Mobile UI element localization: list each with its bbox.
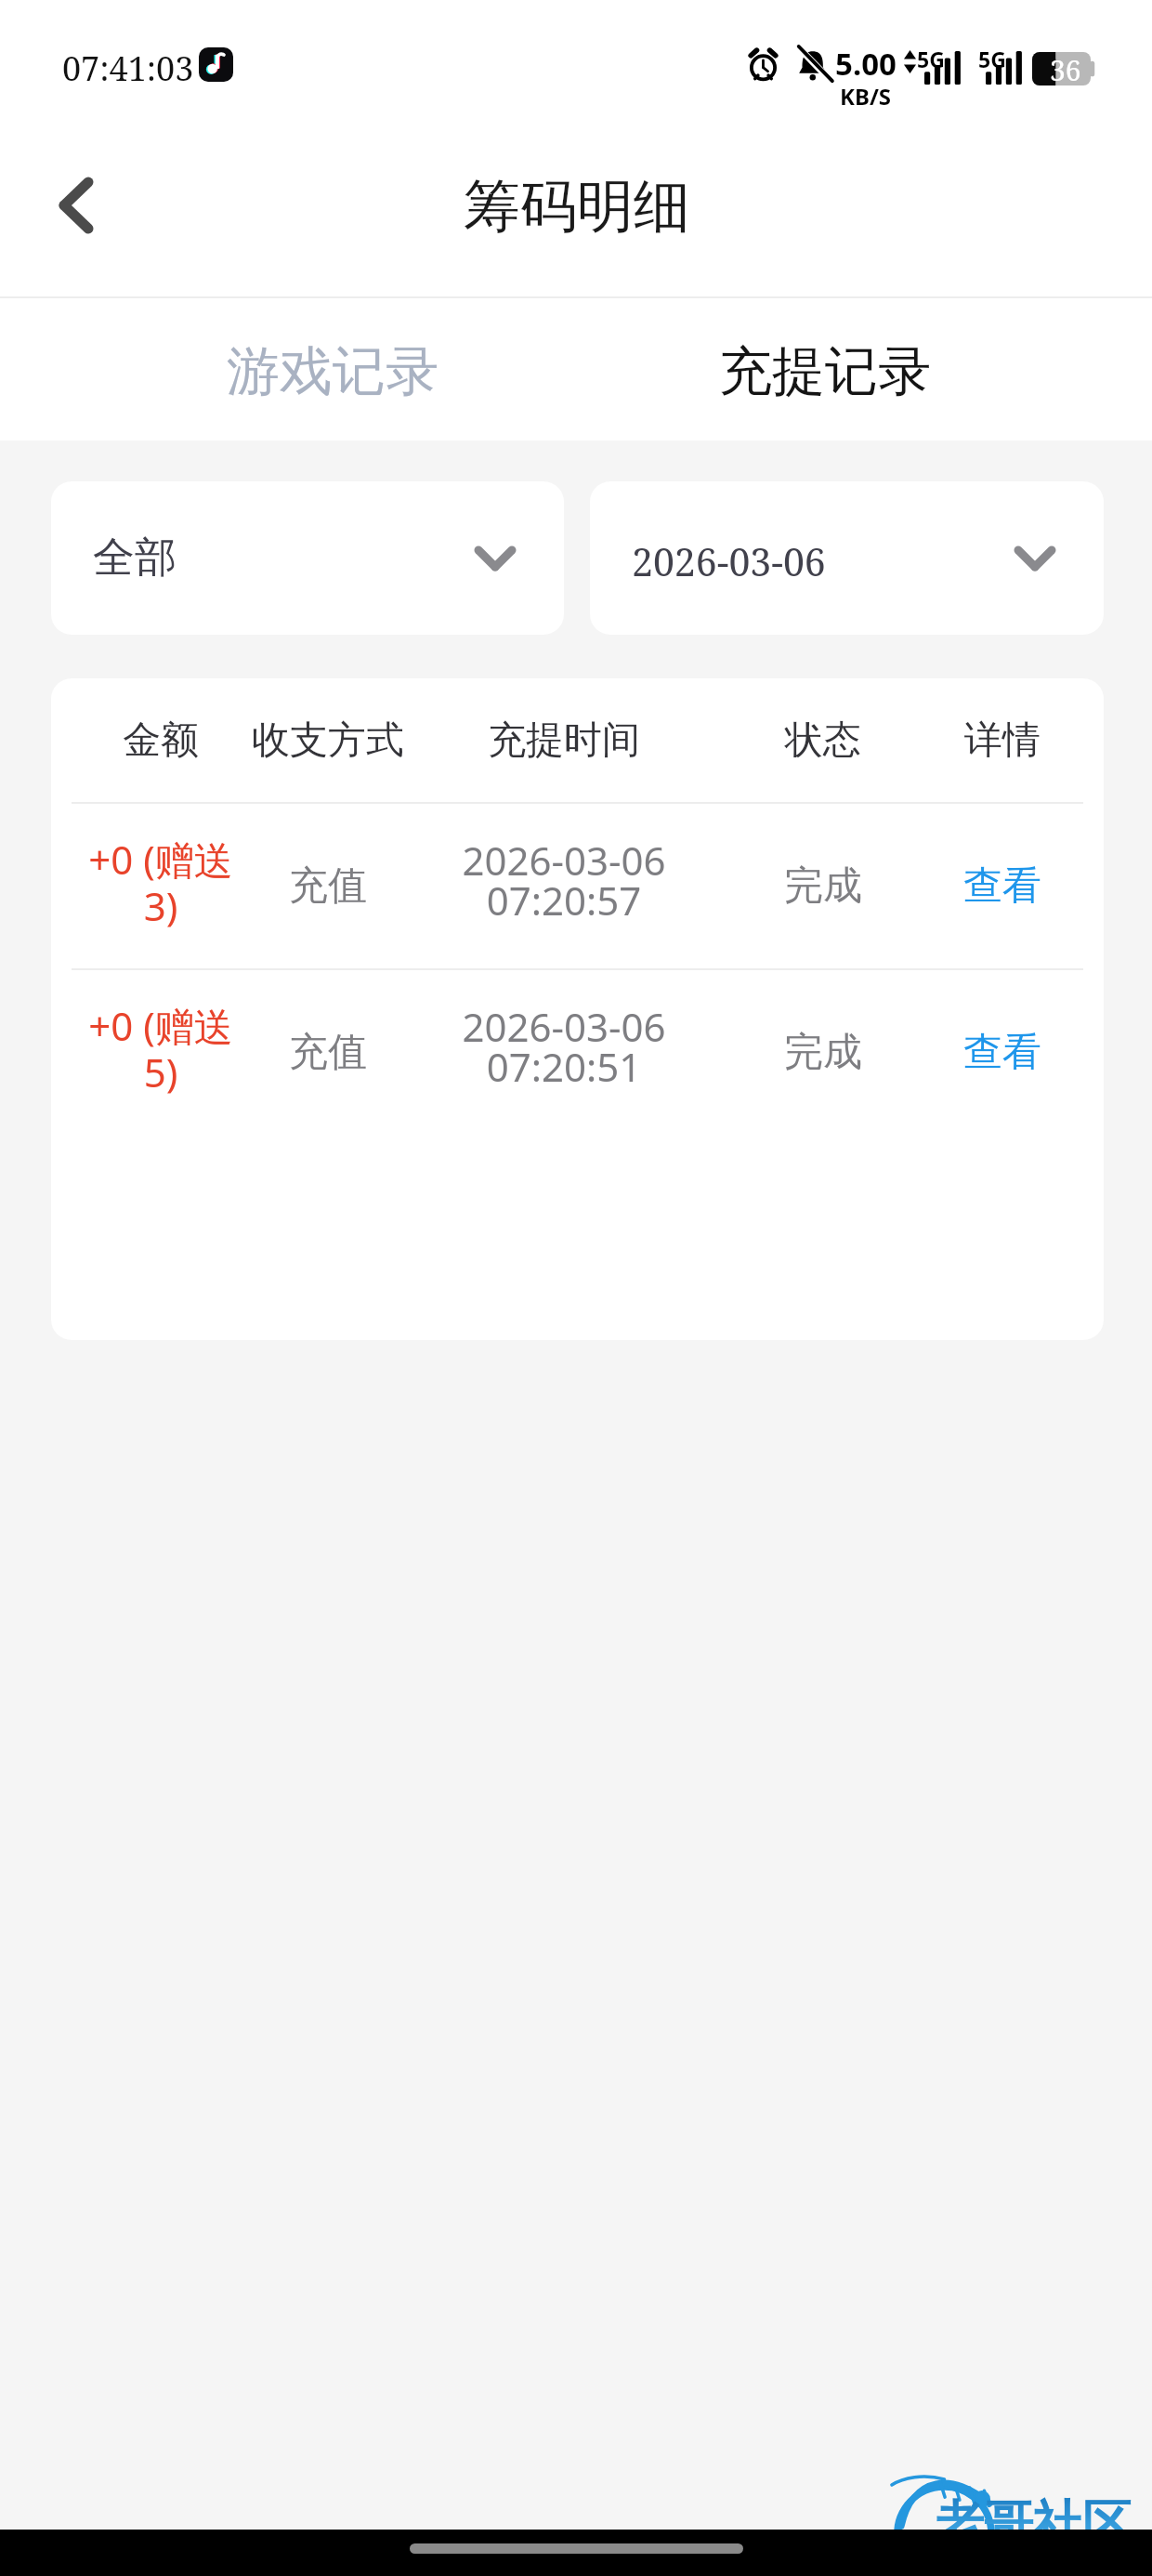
staticText: 2026-03-06 bbox=[632, 535, 826, 587]
button[interactable]: 游戏记录 bbox=[226, 298, 439, 440]
staticText: 详情 bbox=[964, 716, 1041, 765]
staticText: 收支方式 bbox=[252, 716, 404, 765]
staticText: LAOGESHEQU bbox=[992, 2529, 1124, 2549]
staticText: 游戏记录 bbox=[227, 338, 439, 405]
staticText: 2026-03-06 07:20:51 bbox=[462, 1000, 666, 1093]
staticText: 筹码明细 bbox=[464, 171, 690, 243]
staticText: 全部 bbox=[93, 532, 177, 585]
staticText: 完成 bbox=[784, 861, 862, 911]
staticText: 老哥社区 bbox=[935, 2493, 1132, 2556]
button[interactable]: 2026-03-06 bbox=[590, 481, 1104, 635]
staticText: +0 (赠送 5) bbox=[77, 999, 244, 1099]
staticText: 36 bbox=[1050, 51, 1081, 85]
staticText: 2026-03-06 07:20:57 bbox=[462, 834, 666, 927]
button[interactable]: Back bbox=[30, 159, 123, 252]
staticText: 状态 bbox=[785, 716, 861, 765]
staticText: 充值 bbox=[289, 861, 367, 911]
button[interactable]: 查看 bbox=[900, 970, 1104, 1135]
staticText: 5G bbox=[978, 45, 1006, 73]
button[interactable]: 查看 bbox=[900, 804, 1104, 968]
button[interactable]: 全部 bbox=[51, 481, 564, 635]
staticText: 07:41:03 bbox=[62, 46, 194, 91]
staticText: +0 (赠送 3) bbox=[77, 833, 244, 933]
staticText: 5G bbox=[917, 45, 945, 73]
staticText: 金额 bbox=[123, 716, 199, 765]
staticText: KB/S bbox=[840, 81, 892, 112]
staticText: 充值 bbox=[289, 1028, 367, 1077]
staticText: 查看 bbox=[963, 1028, 1041, 1077]
staticText: 查看 bbox=[963, 861, 1041, 911]
staticText: 充提时间 bbox=[488, 716, 640, 765]
button[interactable]: 充提记录 bbox=[718, 298, 932, 440]
staticText: 5.00 bbox=[835, 43, 897, 85]
staticText: 完成 bbox=[784, 1028, 862, 1077]
staticText: 充提记录 bbox=[719, 338, 931, 405]
